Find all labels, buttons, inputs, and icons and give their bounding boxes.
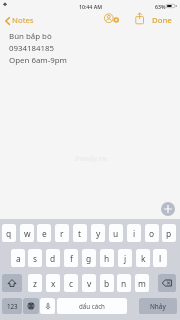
staticText: Bún bắp bò (9, 31, 52, 42)
button[interactable]: s (28, 249, 42, 267)
button[interactable]: d (46, 249, 60, 267)
button[interactable]: Shift (2, 274, 22, 292)
button[interactable]: g (82, 249, 96, 267)
staticText: w (24, 228, 31, 239)
staticText: f (70, 253, 73, 264)
button[interactable]: t (73, 224, 87, 242)
button[interactable]: x (46, 274, 60, 292)
button[interactable]: p (162, 224, 176, 242)
button[interactable]: Dictate (40, 298, 55, 314)
button[interactable]: f (64, 249, 78, 267)
staticText: p (166, 228, 172, 239)
button[interactable]: h (100, 249, 114, 267)
button[interactable]: w (20, 224, 34, 242)
staticText: k (141, 253, 146, 264)
staticText: c (69, 278, 74, 289)
staticText: l (159, 253, 162, 264)
button[interactable]: j (118, 249, 132, 267)
button[interactable]: Delete (158, 274, 176, 292)
staticText: a (16, 253, 21, 264)
staticText: i (133, 228, 136, 239)
button[interactable]: a (11, 249, 25, 267)
staticText: h (104, 253, 110, 264)
staticText: Nhảy (150, 302, 166, 311)
staticText: dấu cách (79, 302, 105, 310)
button[interactable]: k (136, 249, 150, 267)
button[interactable]: e (37, 224, 51, 242)
staticText: z (33, 278, 37, 289)
staticText: 0934184185 (9, 43, 55, 54)
staticText: Open 6am-9pm (9, 55, 67, 66)
staticText: Notes (12, 15, 34, 26)
staticText: o (149, 228, 155, 239)
button[interactable]: Share (133, 12, 146, 28)
staticText: y (96, 228, 101, 239)
staticText: g (86, 253, 92, 264)
staticText: d (50, 253, 56, 264)
staticText: n (121, 278, 127, 289)
staticText: m (138, 278, 146, 289)
staticText: 123 (7, 302, 18, 310)
button[interactable]: n (117, 274, 131, 292)
button[interactable]: i (127, 224, 141, 242)
button[interactable]: o (145, 224, 159, 242)
staticText: Done (152, 15, 172, 26)
staticText: Foody.vn (75, 153, 108, 163)
button[interactable]: z (28, 274, 42, 292)
button[interactable]: u (109, 224, 123, 242)
button[interactable]: Add people (102, 12, 119, 28)
button[interactable]: q (2, 224, 16, 242)
staticText: q (6, 228, 12, 239)
button[interactable]: m (135, 274, 149, 292)
staticText: x (51, 278, 56, 289)
staticText: t (78, 228, 82, 239)
staticText: r (60, 228, 64, 239)
button[interactable]: v (82, 274, 96, 292)
staticText: e (42, 228, 47, 239)
button[interactable]: y (91, 224, 105, 242)
staticText: v (87, 278, 92, 289)
button[interactable]: Notes (5, 14, 34, 27)
button[interactable]: b (100, 274, 114, 292)
button[interactable]: dấu cách (57, 298, 127, 314)
button[interactable]: l (153, 249, 167, 267)
button[interactable]: Add attachment (161, 202, 175, 216)
button[interactable]: r (55, 224, 69, 242)
staticText: 63% (155, 3, 166, 10)
button[interactable]: Next keyboard (23, 298, 39, 314)
button[interactable]: Nhảy (139, 298, 177, 314)
staticText: b (104, 278, 110, 289)
staticText: j (124, 253, 127, 264)
button[interactable]: c (64, 274, 78, 292)
staticText: 10:44 AM (79, 3, 102, 10)
staticText: s (33, 253, 38, 264)
staticText: u (113, 228, 119, 239)
button[interactable]: Done (152, 14, 172, 27)
button[interactable]: 123 (2, 298, 22, 314)
